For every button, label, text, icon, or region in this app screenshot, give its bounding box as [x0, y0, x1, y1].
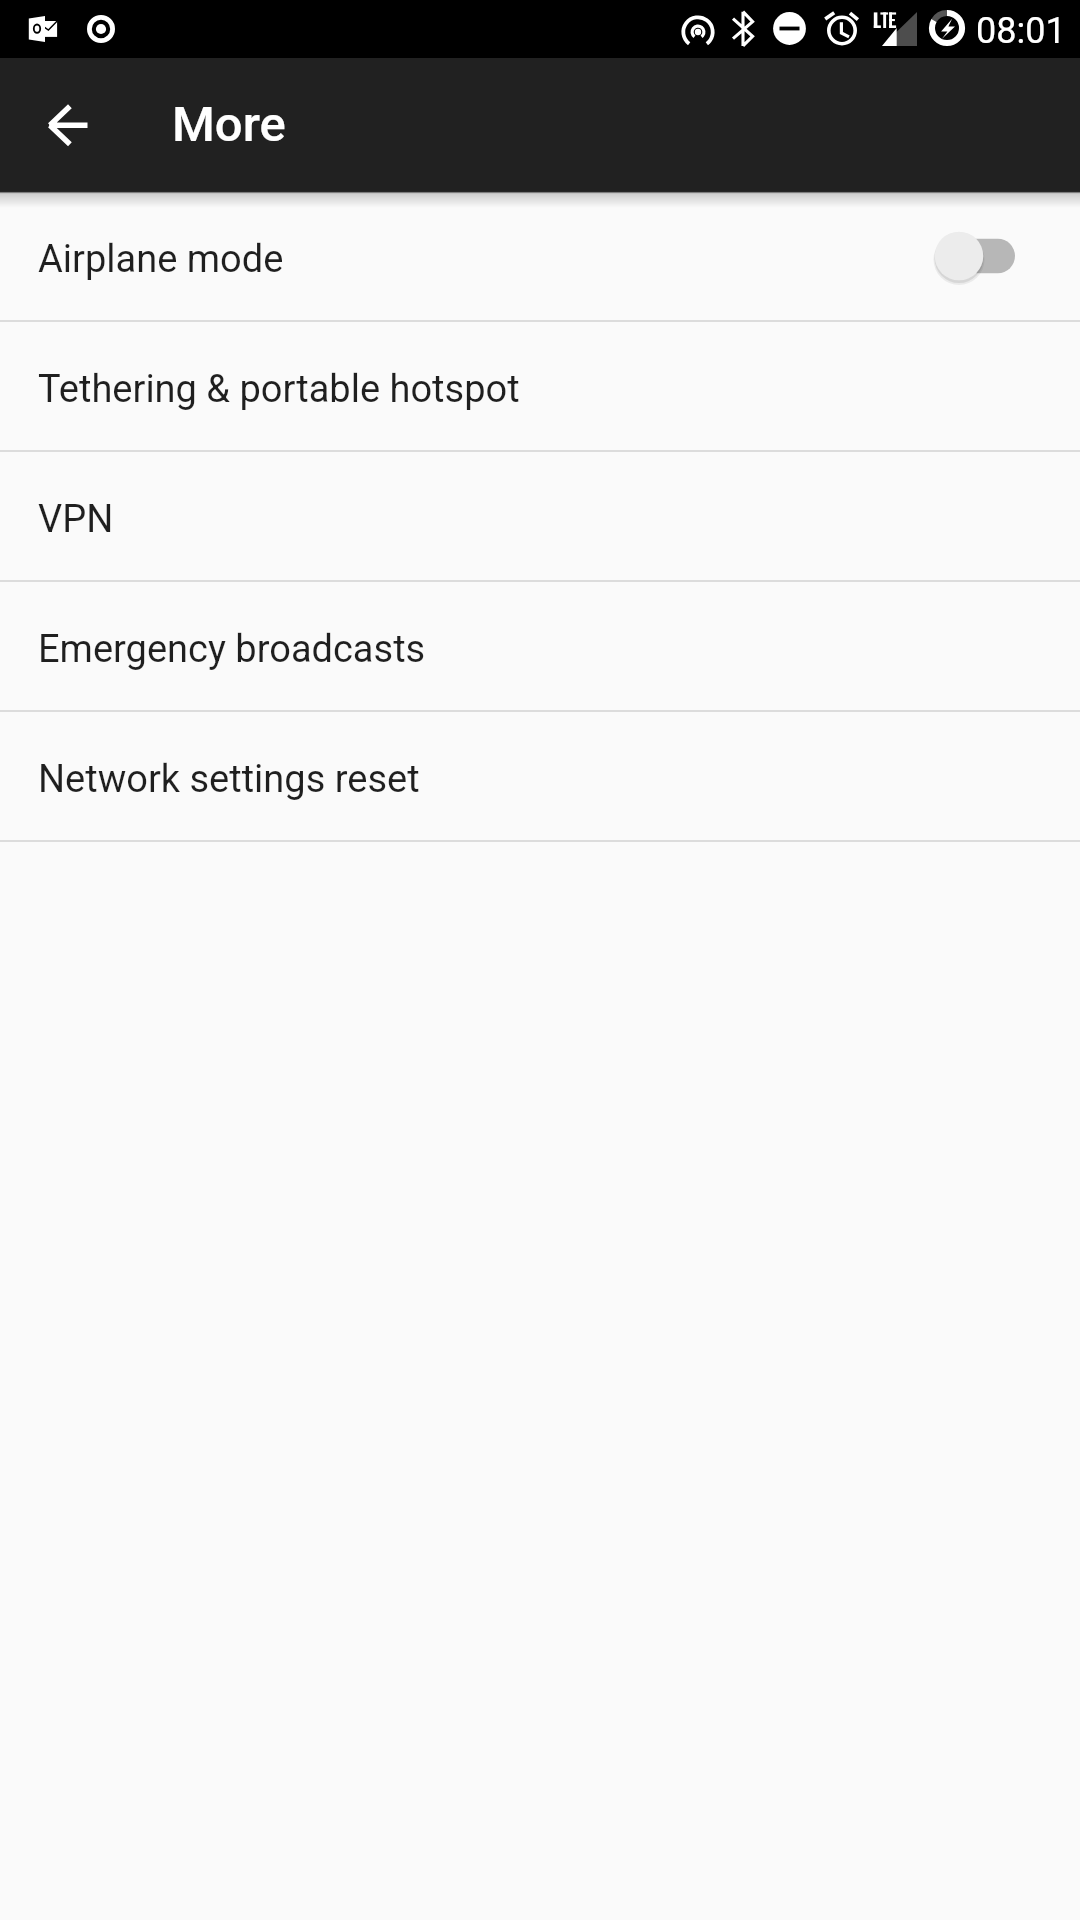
staticText: Airplane mode	[38, 237, 284, 282]
button[interactable]: Network settings reset	[0, 712, 1080, 840]
staticText: Emergency broadcasts	[38, 627, 426, 672]
button[interactable]: Navigate up	[24, 81, 112, 169]
button[interactable]: Airplane mode toggle	[911, 192, 1039, 320]
staticText: Network settings reset	[38, 757, 420, 802]
button[interactable]: Tethering & portable hotspot	[0, 322, 1080, 450]
button[interactable]: VPN	[0, 452, 1080, 580]
button[interactable]: Emergency broadcasts	[0, 582, 1080, 710]
button[interactable]: Airplane mode	[0, 191, 1080, 320]
staticText: Tethering & portable hotspot	[38, 367, 520, 412]
staticText: More	[172, 96, 286, 153]
staticText: 08:01	[976, 10, 1066, 52]
staticText: VPN	[38, 497, 114, 542]
